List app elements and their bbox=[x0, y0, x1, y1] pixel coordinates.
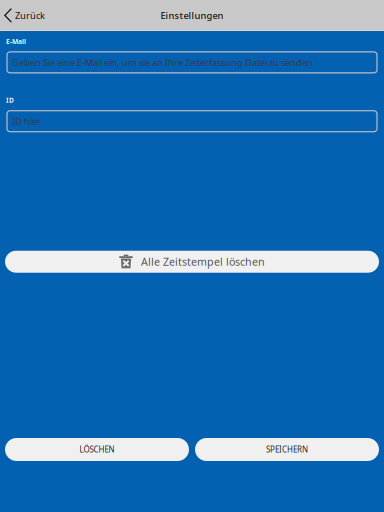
button[interactable]: Alle Zeitstempel löschen bbox=[5, 251, 379, 273]
staticText: Geben Sie eine E-Mail ein, um sie an Ihr… bbox=[12, 56, 313, 69]
button[interactable]: LÖSCHEN bbox=[5, 438, 189, 461]
button[interactable]: Geben Sie eine E-Mail ein, um sie an Ihr… bbox=[7, 52, 377, 73]
staticText: LÖSCHEN bbox=[79, 444, 114, 455]
staticText: SPEICHERN bbox=[266, 444, 308, 455]
staticText: Alle Zeitstempel löschen bbox=[141, 255, 265, 269]
staticText: Zurück bbox=[15, 9, 45, 22]
button[interactable]: ID hier bbox=[7, 111, 377, 132]
staticText: E-Mail bbox=[6, 37, 26, 46]
button[interactable]: SPEICHERN bbox=[195, 438, 379, 461]
button[interactable]: Zurück bbox=[0, 0, 53, 31]
staticText: Einstellungen bbox=[160, 9, 223, 22]
staticText: ID bbox=[6, 96, 14, 105]
staticText: ID hier bbox=[12, 115, 41, 127]
